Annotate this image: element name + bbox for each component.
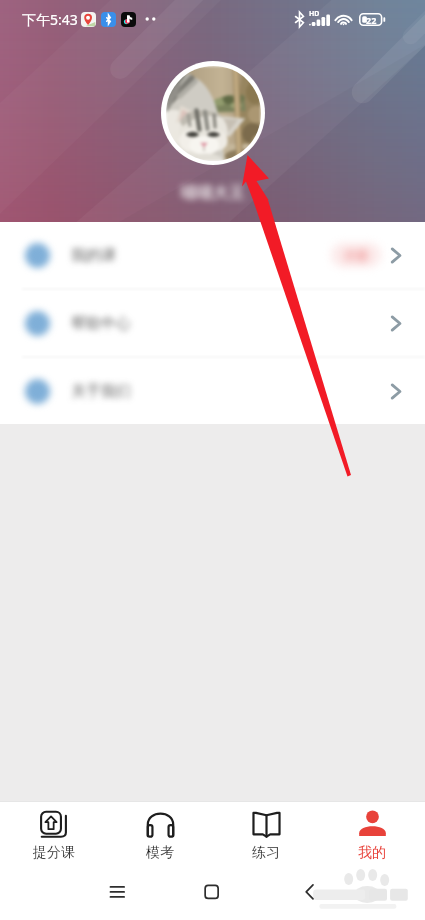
staticText: 我的课 <box>71 246 116 265</box>
button[interactable]: 我的 <box>319 802 425 868</box>
staticText: 喵喵大王 <box>181 183 245 203</box>
button[interactable]: 练习 <box>213 802 319 868</box>
staticText: 练习 <box>252 844 280 862</box>
staticText: 帮助中心 <box>71 314 131 333</box>
button[interactable]: 我的课 <box>0 222 425 288</box>
staticText: 22 <box>366 14 377 26</box>
staticText: 关于我们 <box>71 382 131 401</box>
staticText: 模考 <box>146 844 174 862</box>
staticText: 开通 <box>344 248 368 263</box>
button[interactable]: 帮助中心 <box>0 290 425 356</box>
button[interactable]: 关于我们 <box>0 358 425 424</box>
button[interactable]: 模考 <box>107 802 213 868</box>
button[interactable]: Profile photo <box>161 61 265 165</box>
staticText: 下午5:43 <box>22 10 78 29</box>
staticText: 我的 <box>358 844 386 862</box>
button[interactable]: 提分课 <box>0 802 107 868</box>
staticText: 提分课 <box>33 844 75 862</box>
staticText: HD <box>309 9 320 19</box>
